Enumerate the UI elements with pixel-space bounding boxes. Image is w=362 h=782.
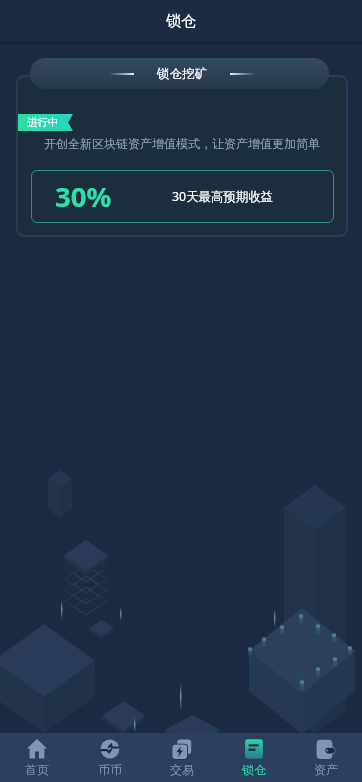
staticText: 首页 [25,762,49,777]
staticText: 锁仓 [166,12,196,31]
button[interactable]: 交易 [146,733,218,782]
button[interactable]: 资产 [290,733,362,782]
staticText: 币币 [98,762,122,777]
staticText: 30% [55,178,112,215]
button[interactable]: 锁仓挖矿 [30,58,329,89]
staticText: 开创全新区块链资产增值模式，让资产增值更加简单 [16,136,348,151]
staticText: 交易 [170,762,194,777]
staticText: 锁仓挖矿 [157,66,207,82]
staticText: 资产 [314,762,338,777]
button[interactable]: 锁仓 [218,733,290,782]
button[interactable]: 进行中 [16,75,348,237]
button[interactable]: 首页 [0,733,73,782]
staticText: 30天最高预期收益 [172,188,273,205]
button[interactable]: 币币 [73,733,146,782]
staticText: 进行中 [27,116,59,129]
staticText: 锁仓 [242,762,266,777]
